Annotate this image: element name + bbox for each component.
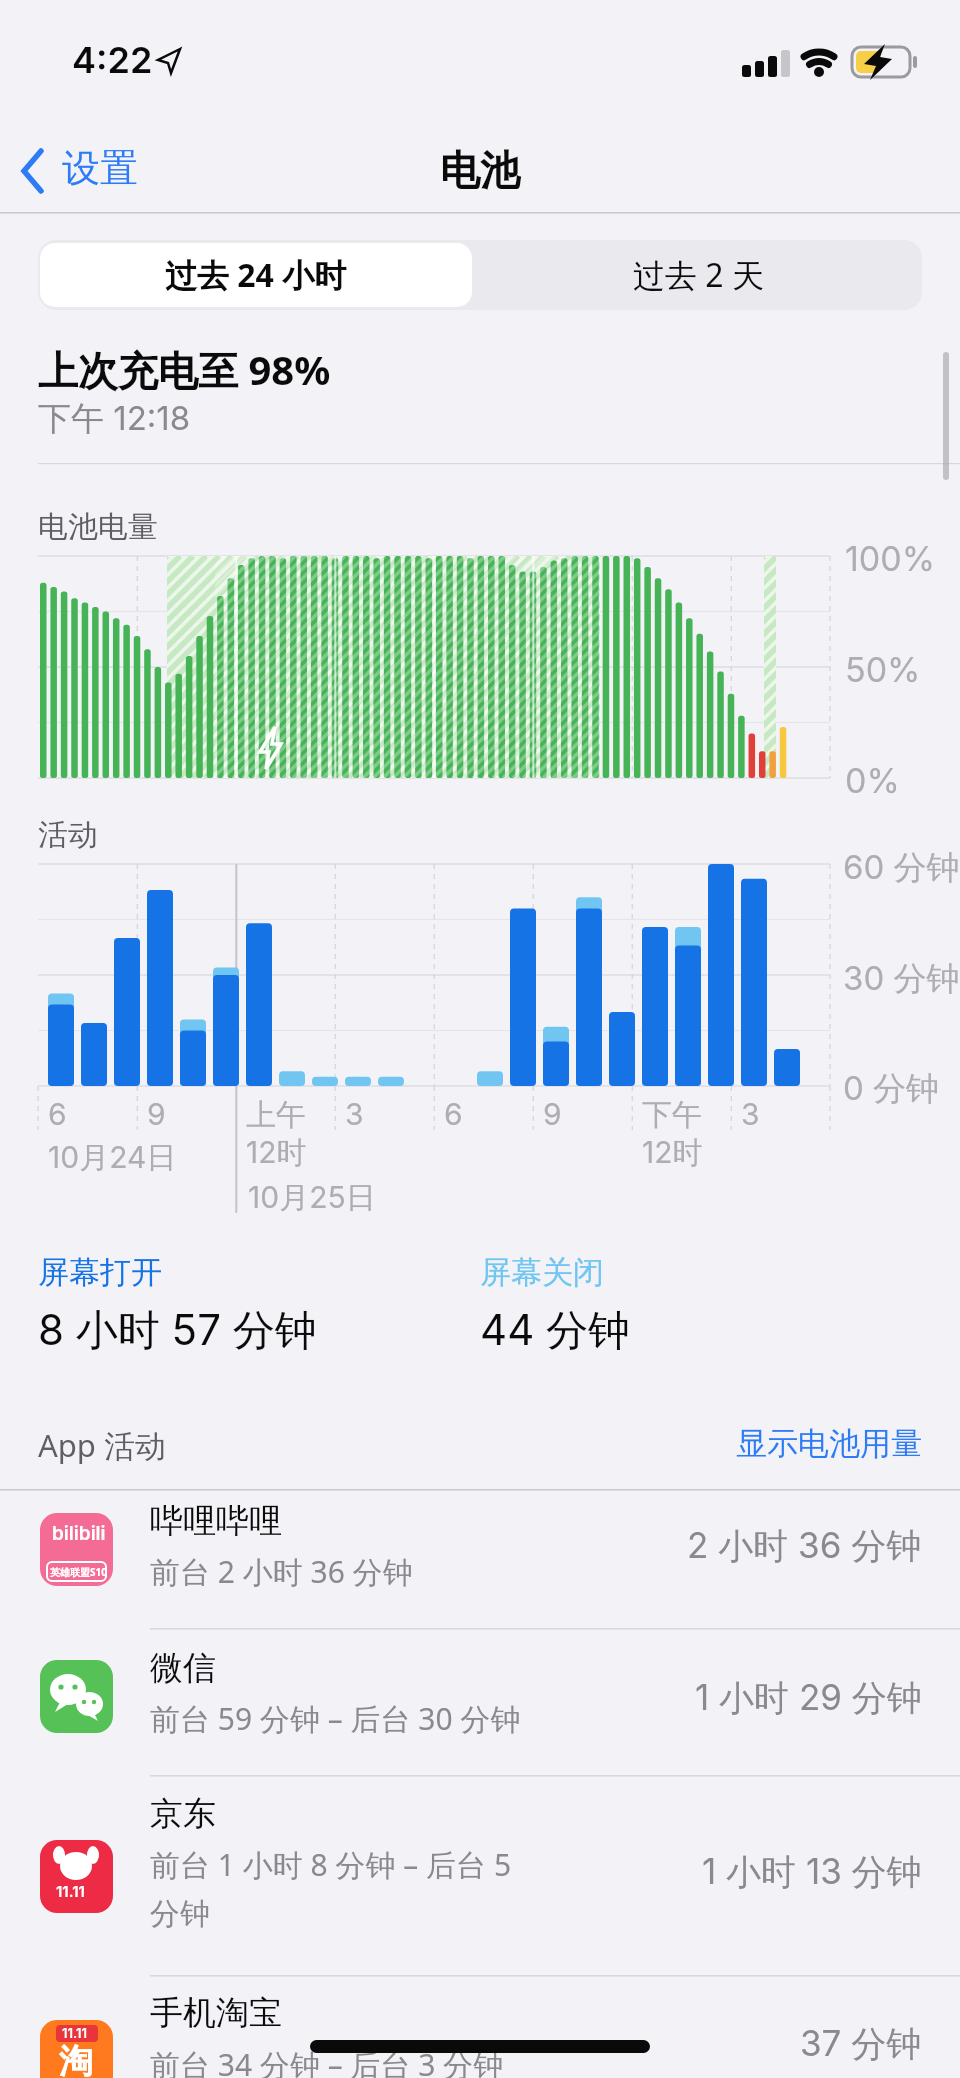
staticText: 3: [345, 1096, 364, 1132]
staticText: 电池: [440, 145, 520, 195]
staticText: 分钟: [150, 1895, 210, 1933]
staticText: 京东: [150, 1793, 216, 1835]
staticText: 前台 1 小时 8 分钟 – 后台 5: [150, 1844, 512, 1885]
staticText: 9: [147, 1096, 166, 1132]
staticText: 前台 2 小时 36 分钟: [150, 1551, 413, 1592]
button[interactable]: 显示电池用量: [600, 1424, 922, 1463]
staticText: 37 分钟: [800, 2022, 922, 2066]
staticText: 屏幕关闭: [480, 1253, 604, 1292]
staticText: 12时: [246, 1134, 307, 1172]
staticText: 哔哩哔哩: [150, 1500, 282, 1542]
button[interactable]: [0, 1775, 960, 1975]
staticText: App 活动: [38, 1424, 166, 1466]
staticText: 设置: [62, 144, 138, 192]
staticText: 10月25日: [248, 1179, 376, 1217]
staticText: 过去 24 小时: [165, 253, 347, 297]
staticText: 上午: [246, 1096, 306, 1134]
staticText: 8 小时 57 分钟: [38, 1304, 317, 1357]
button[interactable]: 设置: [14, 140, 164, 202]
staticText: 10月24日: [48, 1139, 177, 1177]
button[interactable]: 过去 2 天: [478, 243, 918, 307]
button[interactable]: [0, 1628, 960, 1775]
staticText: 过去 2 天: [633, 253, 764, 297]
staticText: 2 小时 36 分钟: [687, 1524, 922, 1568]
staticText: 手机淘宝: [150, 1992, 282, 2034]
staticText: 3: [741, 1096, 760, 1132]
staticText: 上次充电至 98%: [38, 342, 331, 397]
staticText: 4:22: [72, 38, 153, 82]
staticText: 英雄联盟S10: [50, 1565, 107, 1579]
staticText: 前台 59 分钟 – 后台 30 分钟: [150, 1698, 521, 1739]
staticText: 6: [48, 1096, 67, 1132]
staticText: 活动: [38, 816, 98, 854]
staticText: 12时: [642, 1134, 703, 1172]
staticText: 显示电池用量: [736, 1424, 922, 1463]
staticText: 9: [543, 1096, 562, 1132]
staticText: 50%: [845, 649, 921, 690]
staticText: 下午: [642, 1096, 702, 1134]
staticText: 微信: [150, 1647, 216, 1689]
staticText: 60 分钟: [843, 847, 960, 889]
staticText: 屏幕打开: [38, 1253, 162, 1292]
staticText: 100%: [845, 538, 936, 579]
staticText: 电池电量: [38, 508, 158, 546]
staticText: bilibili: [52, 1522, 106, 1545]
staticText: 6: [444, 1096, 463, 1132]
staticText: 1 小时 29 分钟: [695, 1676, 922, 1720]
staticText: 0 分钟: [843, 1068, 940, 1110]
staticText: 淘: [59, 2040, 93, 2078]
staticText: 30 分钟: [843, 958, 960, 1000]
staticText: 11.11: [56, 1882, 85, 1900]
staticText: 前台 34 分钟 – 后台 3 分钟: [150, 2044, 504, 2078]
staticText: 11.11: [62, 2025, 87, 2041]
button[interactable]: 过去 24 小时: [40, 243, 472, 307]
staticText: 下午 12:18: [38, 398, 191, 440]
staticText: 0%: [845, 760, 900, 801]
staticText: 44 分钟: [480, 1304, 631, 1357]
staticText: 1 小时 13 分钟: [702, 1850, 922, 1894]
button[interactable]: [0, 1975, 960, 2078]
button[interactable]: [0, 1490, 960, 1628]
